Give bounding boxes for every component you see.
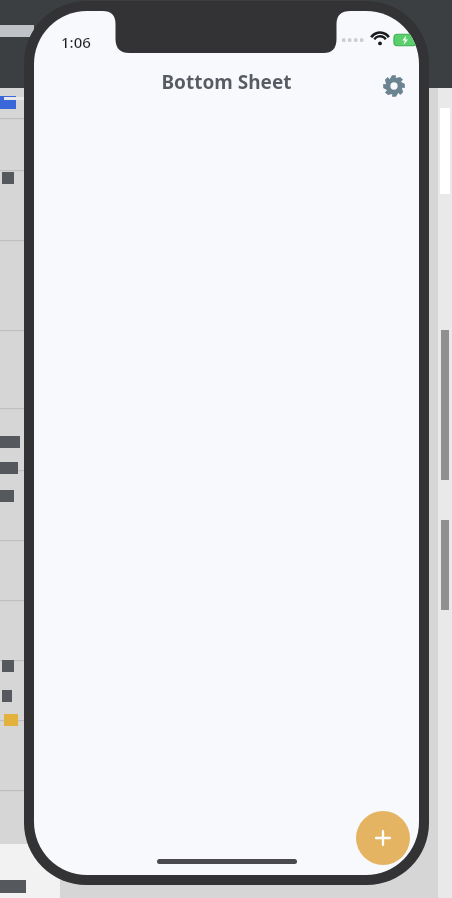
button[interactable]: Add xyxy=(356,811,410,865)
button[interactable]: Settings xyxy=(375,67,413,105)
staticText: 1:06 xyxy=(61,32,91,52)
staticText: Bottom Sheet xyxy=(34,69,419,99)
